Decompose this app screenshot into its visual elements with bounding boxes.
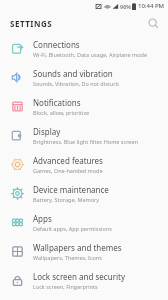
button[interactable]: Sounds and vibration bbox=[0, 63, 168, 92]
staticText: Wi-Fi, Bluetooth, Data usage, Airplane m… bbox=[33, 51, 147, 58]
button[interactable]: Advanced features bbox=[0, 150, 168, 179]
staticText: Sounds and vibration bbox=[33, 68, 113, 79]
staticText: 96% bbox=[120, 3, 131, 10]
button[interactable]: Device maintenance bbox=[0, 179, 168, 208]
staticText: Brightness, Blue light filter, Home scre… bbox=[33, 138, 138, 145]
staticText: Block, allow, prioritize bbox=[33, 109, 90, 116]
button[interactable]: Wallpapers and themes bbox=[0, 237, 168, 266]
staticText: 10:44 PM bbox=[138, 2, 165, 10]
staticText: Battery, Storage, Memory bbox=[33, 196, 100, 203]
staticText: SETTINGS bbox=[10, 18, 53, 29]
staticText: Wallpapers and themes bbox=[33, 242, 122, 253]
staticText: Sounds, Vibration, Do not disturb bbox=[33, 80, 119, 87]
staticText: Wallpapers, Themes, Icons bbox=[33, 254, 102, 261]
staticText: Notifications bbox=[33, 97, 81, 108]
staticText: Display bbox=[33, 126, 61, 137]
button[interactable]: Apps bbox=[0, 208, 168, 237]
button[interactable]: Notifications bbox=[0, 92, 168, 121]
button[interactable]: Lock screen and security bbox=[0, 266, 168, 295]
staticText: Apps bbox=[33, 213, 52, 224]
button[interactable]: Connections bbox=[0, 34, 168, 63]
staticText: Default apps, App permissions bbox=[33, 225, 112, 232]
staticText: Lock screen and security bbox=[33, 271, 125, 282]
staticText: Games, One-handed mode bbox=[33, 167, 103, 174]
staticText: Lock screen, Fingerprints bbox=[33, 283, 98, 290]
button[interactable]: Display bbox=[0, 121, 168, 150]
button[interactable]: Search bbox=[144, 14, 162, 32]
staticText: Connections bbox=[33, 39, 80, 50]
staticText: Device maintenance bbox=[33, 184, 109, 195]
staticText: Advanced features bbox=[33, 155, 103, 166]
